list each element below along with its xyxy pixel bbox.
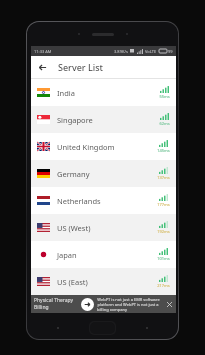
staticText: platform and WebPT is not just a <box>97 302 159 307</box>
button[interactable]: Netherlands <box>31 187 176 214</box>
button[interactable]: Back <box>31 56 53 78</box>
staticText: billing company <box>97 307 127 312</box>
staticText: 11:33 AM <box>34 49 52 54</box>
staticText: WebPT is not just a EMR software <box>97 297 160 302</box>
staticText: 55ms <box>159 94 170 99</box>
button[interactable]: United Kingdom <box>31 133 176 160</box>
staticText: Netherlands <box>57 196 101 206</box>
button[interactable]: US (East) <box>31 268 176 295</box>
button[interactable]: Open ad <box>81 298 94 311</box>
staticText: 192ms <box>157 229 170 234</box>
staticText: Germany <box>57 169 90 179</box>
staticText: 62ms <box>159 121 170 126</box>
staticText: India <box>57 88 75 98</box>
button[interactable]: Japan <box>31 241 176 268</box>
staticText: VoLTE <box>145 49 157 54</box>
button[interactable]: India <box>31 79 176 106</box>
staticText: Japan <box>57 250 77 260</box>
staticText: Server List <box>58 61 104 73</box>
staticText: Physical Therapy <box>34 297 74 304</box>
staticText: Singapore <box>57 115 93 125</box>
button[interactable]: Singapore <box>31 106 176 133</box>
staticText: 99 <box>168 49 173 54</box>
staticText: US (West) <box>57 223 91 233</box>
button[interactable]: US (West) <box>31 214 176 241</box>
staticText: 205ms <box>157 306 170 311</box>
button[interactable]: Germany <box>31 160 176 187</box>
staticText: Billing <box>34 304 49 311</box>
staticText: 217ms <box>157 283 170 288</box>
staticText: 101ms <box>157 256 170 261</box>
button[interactable]: Canada <box>31 295 176 313</box>
staticText: 3.89K/s <box>114 49 128 54</box>
staticText: United Kingdom <box>57 142 115 152</box>
staticText: 145ms <box>157 148 170 153</box>
staticText: US (East) <box>57 277 88 287</box>
staticText: 137ms <box>157 175 170 180</box>
button[interactable]: Physical Therapy <box>31 295 176 313</box>
staticText: Canada <box>57 299 84 309</box>
staticText: 177ms <box>157 202 170 207</box>
button[interactable]: Close ad <box>166 301 173 308</box>
